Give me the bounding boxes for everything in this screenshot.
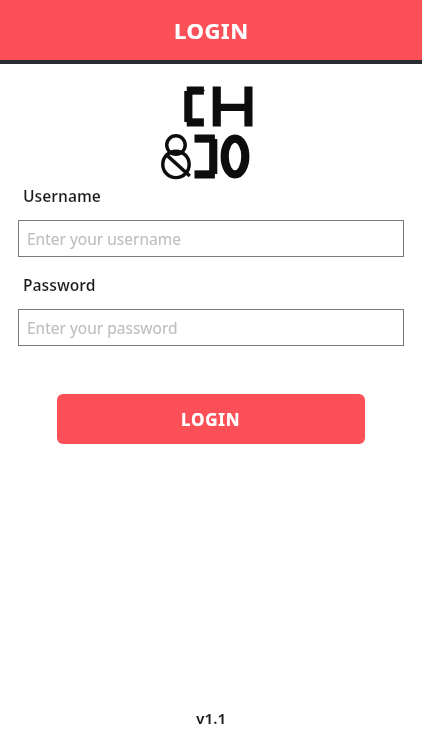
staticText: LOGIN (174, 15, 249, 45)
staticText: Password (23, 274, 96, 295)
staticText: v1.1 (196, 708, 226, 728)
staticText: Enter your password (27, 317, 178, 338)
button[interactable]: Enter your password (18, 309, 404, 346)
staticText: Enter your username (27, 228, 181, 249)
button[interactable]: LOGIN (57, 394, 365, 444)
other: CH & CO logo (163, 82, 259, 182)
staticText: LOGIN (181, 408, 241, 431)
staticText: Username (23, 185, 101, 206)
button[interactable]: Enter your username (18, 220, 404, 257)
